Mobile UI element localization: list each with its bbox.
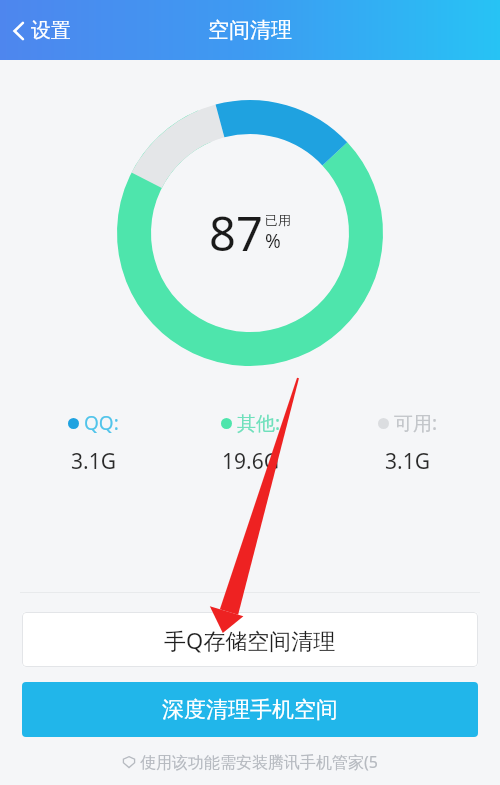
staticText: 深度清理手机空间 xyxy=(162,696,338,724)
staticText: 已用 xyxy=(265,212,291,228)
button[interactable]: 设置 xyxy=(0,12,83,49)
staticText: % xyxy=(265,228,281,254)
staticText: 87 xyxy=(209,201,263,265)
staticText: 使用该功能需安装腾讯手机管家(5 xyxy=(140,751,378,773)
staticText: 其他: xyxy=(237,410,281,436)
staticText: 手Q存储空间清理 xyxy=(164,625,336,655)
staticText: 3.1G xyxy=(71,447,116,476)
staticText: 3.1G xyxy=(385,447,430,476)
button[interactable]: 深度清理手机空间 xyxy=(22,682,478,737)
button[interactable]: 手Q存储空间清理 xyxy=(22,612,478,667)
staticText: QQ: xyxy=(84,410,119,436)
staticText: 设置 xyxy=(31,18,71,43)
staticText: 可用: xyxy=(394,410,438,436)
staticText: 空间清理 xyxy=(208,17,292,43)
staticText: 19.6G xyxy=(222,447,279,476)
